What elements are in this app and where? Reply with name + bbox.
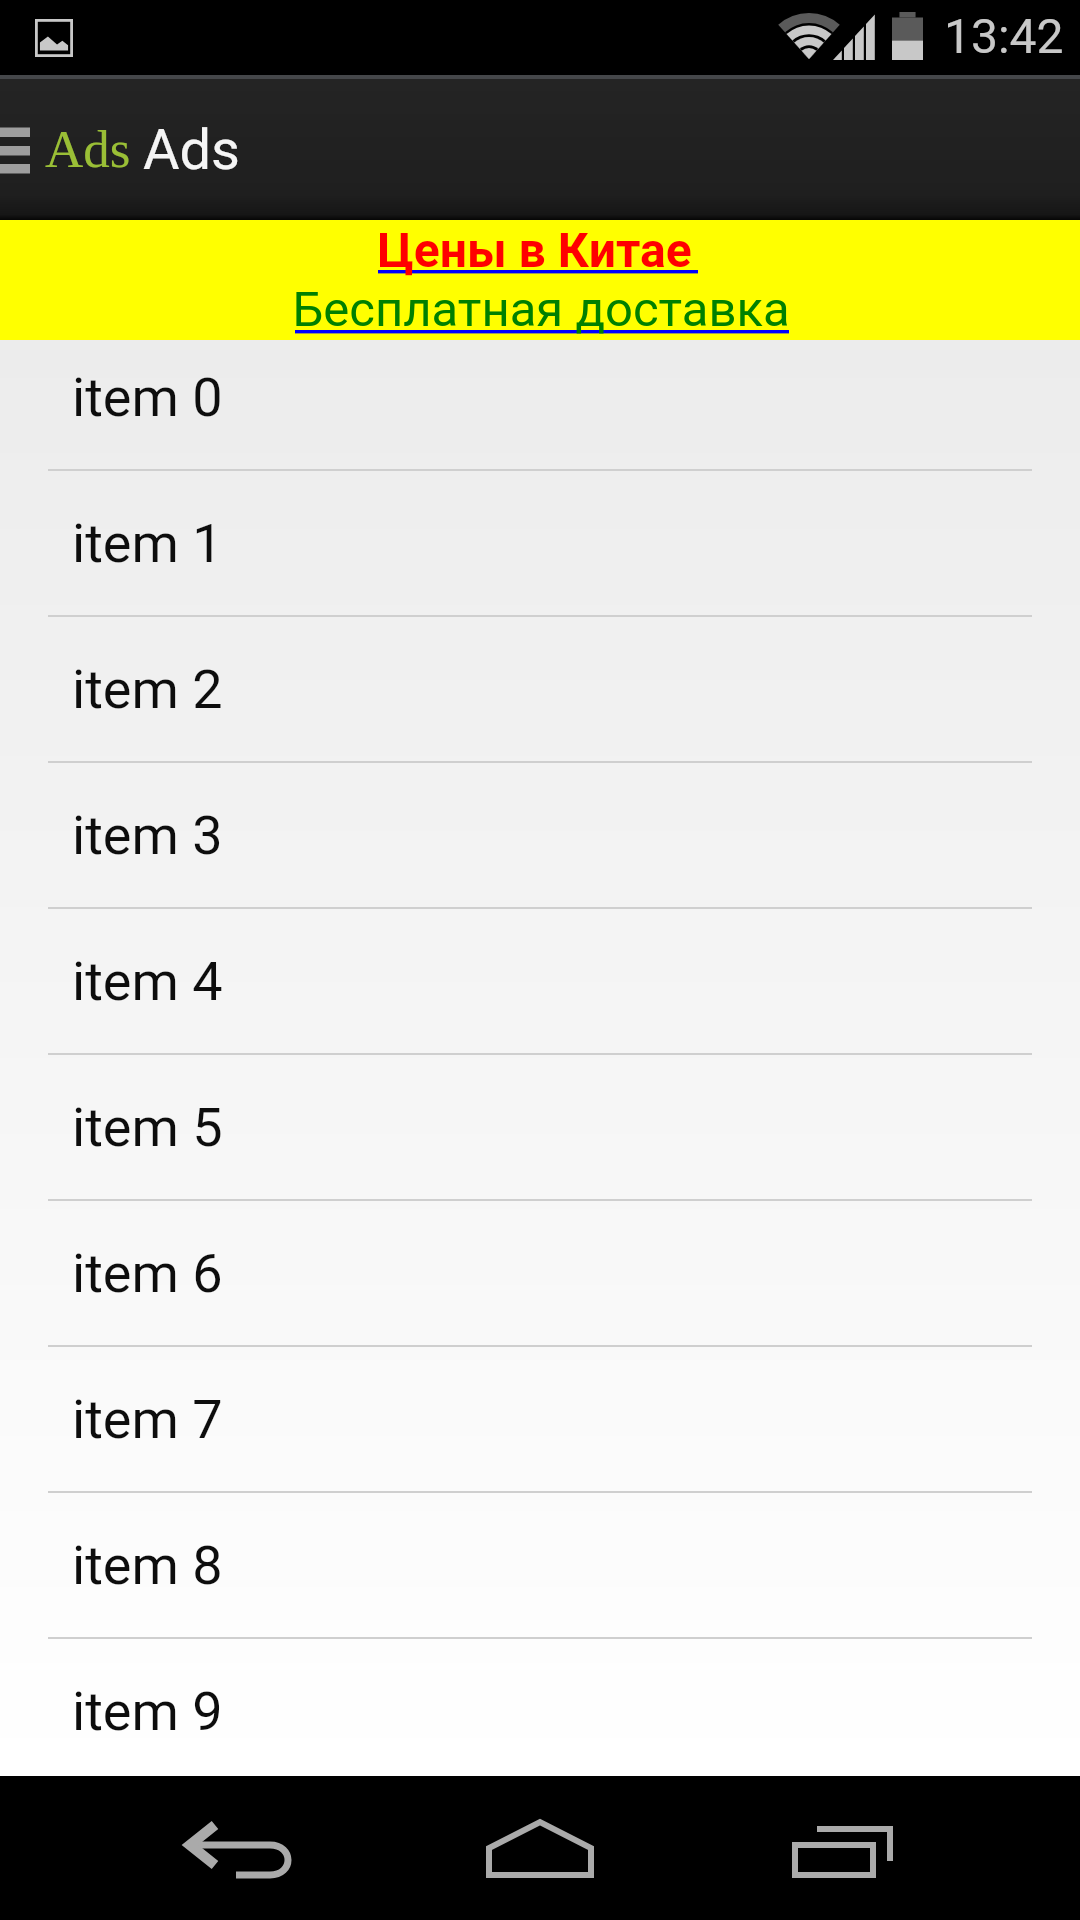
staticText: Ads [45, 120, 131, 179]
button[interactable]: Open navigation drawer [0, 95, 40, 205]
button[interactable]: item 5 [0, 1055, 1080, 1199]
button[interactable]: Back [160, 1776, 320, 1920]
staticText: item 8 [72, 1534, 223, 1597]
button[interactable]: item 3 [0, 763, 1080, 907]
staticText: item 1 [72, 512, 223, 575]
button[interactable]: Home [460, 1776, 620, 1920]
staticText: Цены в Китае [371, 222, 698, 278]
button[interactable]: item 8 [0, 1493, 1080, 1637]
staticText: item 4 [72, 950, 223, 1013]
button[interactable]: item 9 [0, 1639, 1080, 1783]
staticText: item 2 [72, 658, 223, 721]
staticText: item 7 [72, 1388, 223, 1451]
button[interactable]: item 0 [0, 325, 1080, 469]
button[interactable]: item 7 [0, 1347, 1080, 1491]
button[interactable]: item 1 [0, 471, 1080, 615]
button[interactable]: item 4 [0, 909, 1080, 1053]
staticText: Ads [143, 117, 241, 183]
staticText: item 9 [72, 1680, 223, 1743]
button[interactable]: item 2 [0, 617, 1080, 761]
staticText: 13:42 [944, 8, 1064, 64]
staticText: item 5 [72, 1096, 223, 1159]
staticText: item 0 [72, 366, 223, 429]
staticText: item 6 [72, 1242, 223, 1305]
staticText: item 3 [72, 804, 223, 867]
button[interactable]: Recent apps [762, 1776, 922, 1920]
button[interactable]: item 6 [0, 1201, 1080, 1345]
staticText: Бесплатная доставка [292, 281, 790, 338]
button[interactable]: Цены в Китае [0, 220, 1080, 340]
